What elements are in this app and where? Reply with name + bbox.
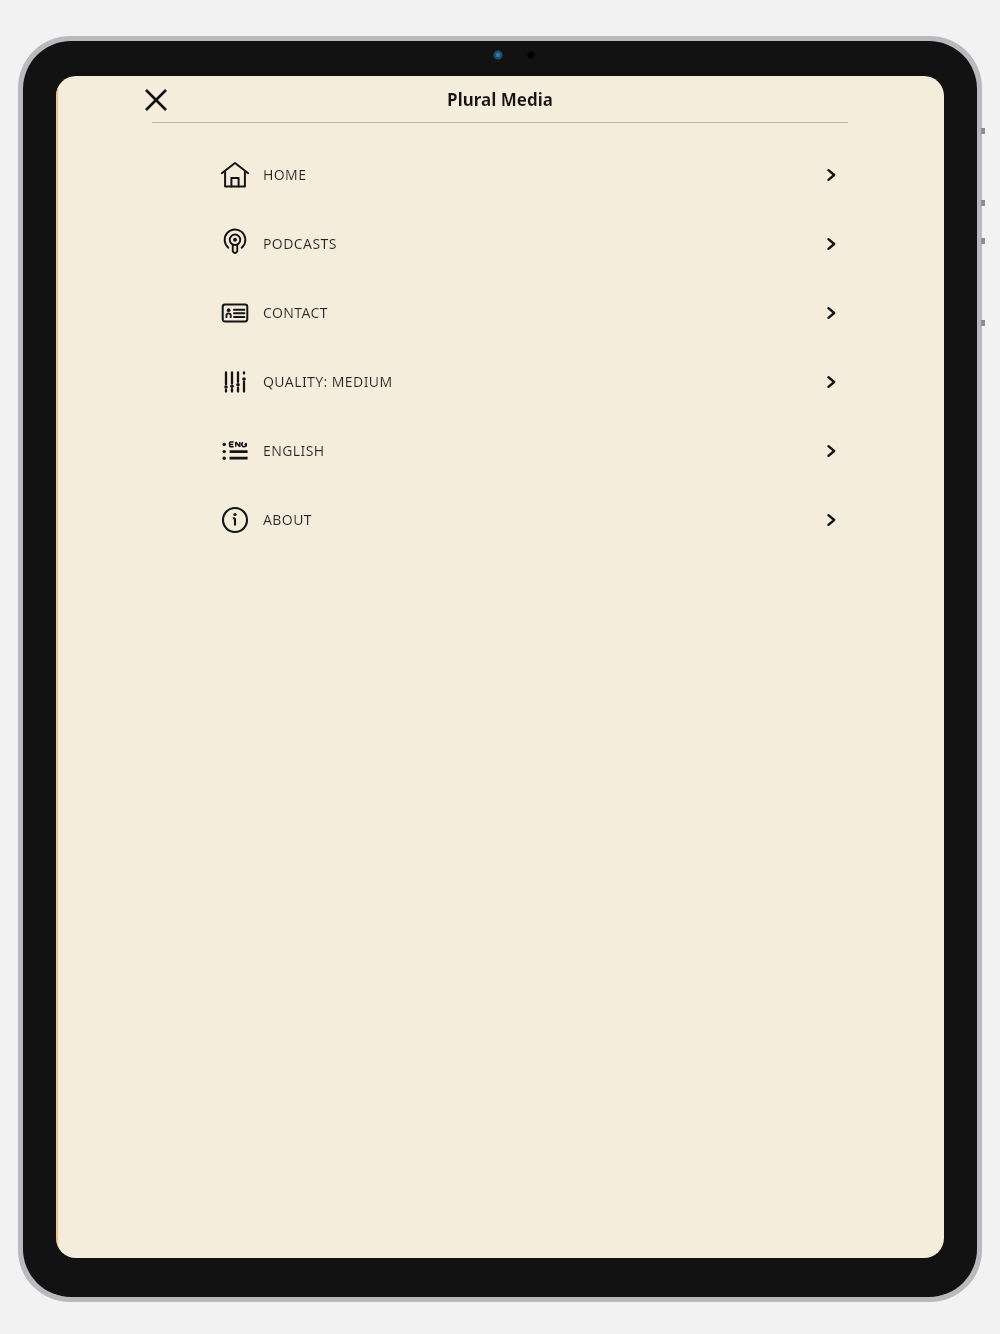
staticText: HOME	[263, 165, 307, 184]
staticText: PODCASTS	[263, 234, 337, 253]
staticText: Plural Media	[56, 88, 944, 111]
button[interactable]: HOME	[56, 140, 944, 209]
button[interactable]: ABOUT	[56, 485, 944, 554]
button[interactable]: CONTACT	[56, 278, 944, 347]
staticText: QUALITY: MEDIUM	[263, 372, 393, 391]
staticText: ABOUT	[263, 510, 312, 529]
staticText: ENGLISH	[263, 441, 325, 460]
button[interactable]: ENGLISH	[56, 416, 944, 485]
button[interactable]: QUALITY: MEDIUM	[56, 347, 944, 416]
button[interactable]: Close	[136, 80, 176, 120]
button[interactable]: PODCASTS	[56, 209, 944, 278]
staticText: CONTACT	[263, 303, 329, 322]
